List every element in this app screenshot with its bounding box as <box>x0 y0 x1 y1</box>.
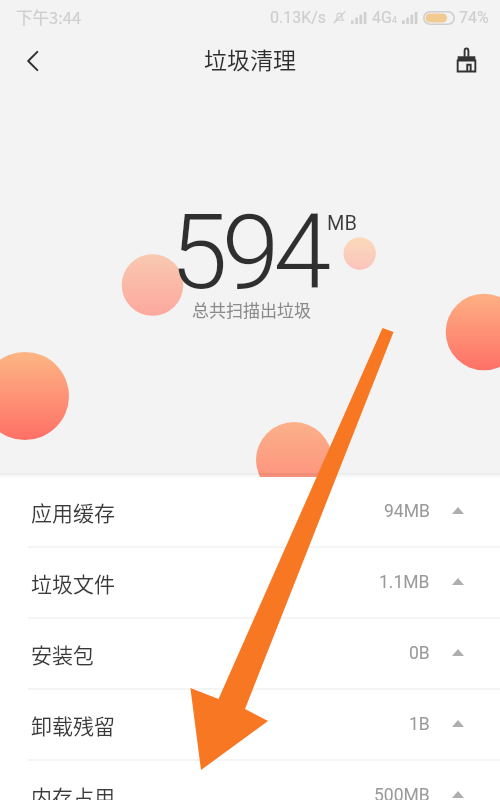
staticText: 垃圾文件 <box>31 568 115 598</box>
staticText: 垃圾清理 <box>204 42 296 75</box>
staticText: 内存占用 <box>31 781 115 800</box>
staticText: 4 <box>392 15 398 26</box>
button[interactable]: 安装包 <box>0 619 500 688</box>
button[interactable]: 卸载残留 <box>0 690 500 759</box>
button[interactable]: Back <box>9 37 57 85</box>
staticText: MB <box>327 211 357 234</box>
staticText: 0.13K/s <box>270 8 327 27</box>
staticText: 总共扫描出垃圾 <box>192 297 311 322</box>
staticText: 74% <box>459 8 489 27</box>
staticText: 下午3:44 <box>16 5 82 29</box>
staticText: 500MB <box>374 785 430 800</box>
button[interactable]: 内存占用 <box>0 761 500 800</box>
staticText: 0B <box>409 643 430 664</box>
staticText: 1B <box>409 714 430 735</box>
staticText: 1.1MB <box>379 572 430 593</box>
button[interactable]: Deep clean <box>442 36 490 84</box>
staticText: 卸载残留 <box>31 710 115 740</box>
button[interactable]: 垃圾文件 <box>0 548 500 617</box>
staticText: 安装包 <box>31 639 94 669</box>
staticText: 4G <box>372 8 392 27</box>
staticText: 94MB <box>384 501 430 522</box>
button[interactable]: 应用缓存 <box>0 477 500 546</box>
staticText: 594 <box>170 192 326 314</box>
staticText: 应用缓存 <box>31 497 115 527</box>
